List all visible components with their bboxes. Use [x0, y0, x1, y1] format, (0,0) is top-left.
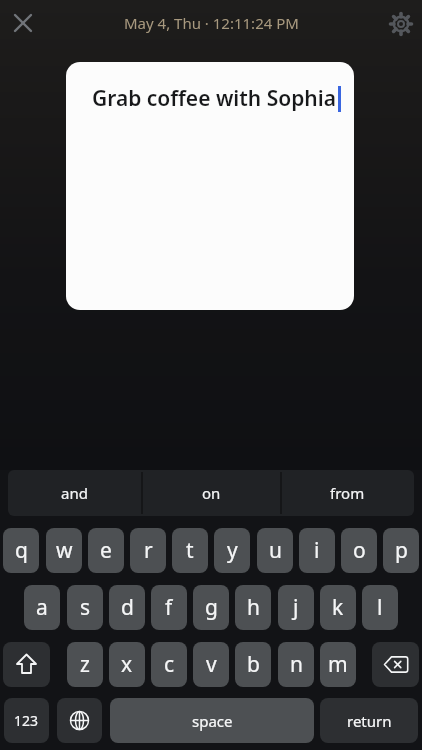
staticText: p [395, 536, 408, 565]
button[interactable]: b [235, 642, 271, 687]
button[interactable]: r [130, 528, 166, 573]
button[interactable]: n [278, 642, 314, 687]
button[interactable]: k [320, 585, 356, 630]
staticText: May 4, Thu · 12:11:24 PM [124, 13, 299, 33]
staticText: r [144, 536, 153, 565]
button[interactable]: h [235, 585, 271, 630]
staticText: m [328, 650, 348, 679]
button[interactable]: t [172, 528, 208, 573]
staticText: k [332, 593, 344, 622]
button[interactable] [3, 642, 50, 687]
staticText: o [353, 536, 366, 565]
staticText: f [165, 593, 173, 622]
button[interactable]: i [299, 528, 335, 573]
staticText: s [80, 593, 91, 622]
staticText: space [192, 711, 233, 731]
button[interactable]: l [362, 585, 398, 630]
button[interactable]: 123 [4, 698, 49, 743]
button[interactable]: s [67, 585, 103, 630]
button[interactable]: f [151, 585, 187, 630]
button[interactable]: return [320, 698, 418, 743]
button[interactable] [57, 698, 102, 743]
staticText: t [186, 536, 194, 565]
button[interactable] [383, 6, 417, 40]
staticText: u [269, 536, 282, 565]
button[interactable]: c [151, 642, 187, 687]
staticText: from [330, 483, 365, 503]
button[interactable]: space [110, 698, 314, 743]
staticText: d [121, 593, 134, 622]
staticText: n [290, 650, 303, 679]
staticText: x [121, 650, 133, 679]
button[interactable]: y [214, 528, 250, 573]
button[interactable]: p [383, 528, 419, 573]
staticText: c [164, 650, 175, 679]
staticText: g [205, 593, 218, 622]
button[interactable]: q [3, 528, 39, 573]
staticText: v [206, 650, 217, 679]
staticText: z [80, 650, 90, 679]
button[interactable]: u [257, 528, 293, 573]
staticText: w [56, 536, 73, 565]
staticText: on [202, 483, 221, 503]
button[interactable]: x [109, 642, 145, 687]
button[interactable]: and [8, 470, 141, 516]
staticText: a [36, 593, 48, 622]
staticText: b [247, 650, 260, 679]
button[interactable]: from [281, 470, 414, 516]
staticText: j [293, 593, 299, 622]
button[interactable]: j [278, 585, 314, 630]
button[interactable]: d [109, 585, 145, 630]
button[interactable]: e [88, 528, 124, 573]
button[interactable] [6, 6, 40, 40]
button[interactable]: o [341, 528, 377, 573]
button[interactable]: w [46, 528, 82, 573]
staticText: l [377, 593, 383, 622]
staticText: y [227, 536, 238, 565]
button[interactable]: z [67, 642, 103, 687]
button[interactable]: v [193, 642, 229, 687]
button[interactable] [372, 642, 419, 687]
staticText: 123 [14, 711, 39, 730]
staticText: Grab coffee with Sophia [92, 84, 336, 113]
button[interactable]: g [193, 585, 229, 630]
staticText: h [247, 593, 260, 622]
staticText: q [15, 536, 28, 565]
button[interactable]: m [320, 642, 356, 687]
staticText: e [100, 536, 112, 565]
staticText: i [314, 536, 320, 565]
staticText: and [61, 483, 88, 503]
button[interactable]: a [24, 585, 60, 630]
staticText: return [347, 711, 392, 731]
button[interactable]: on [143, 470, 279, 516]
